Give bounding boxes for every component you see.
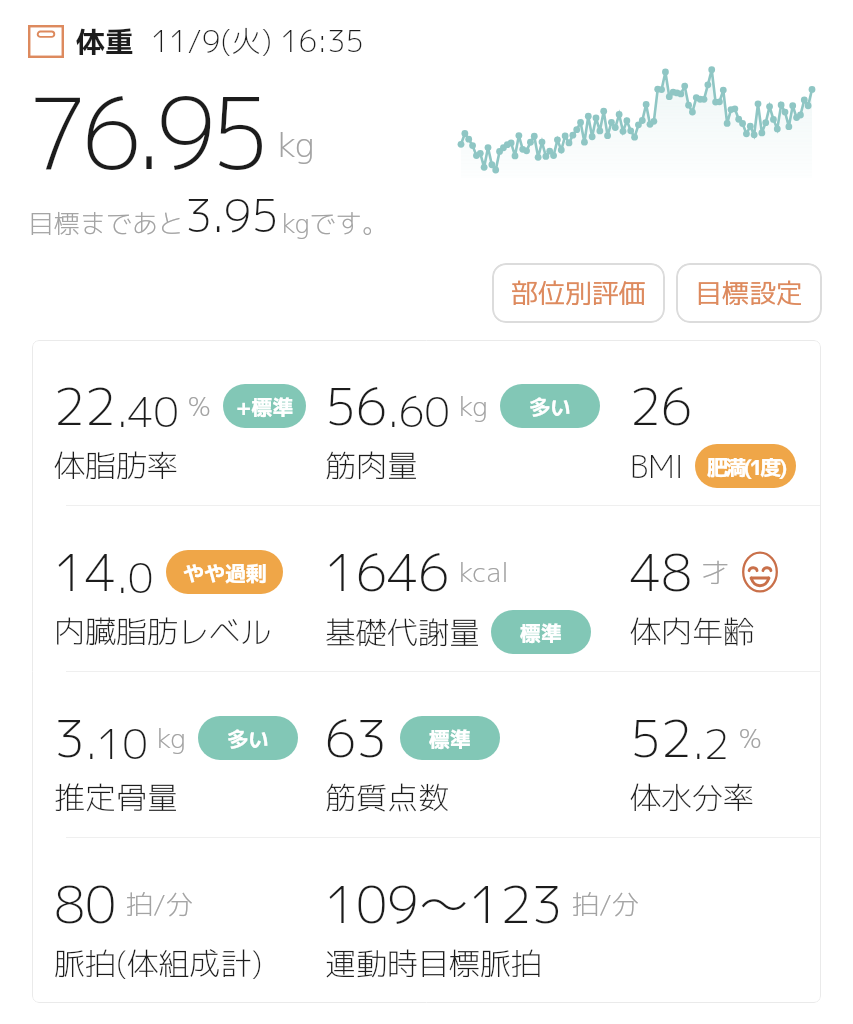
staticText: 運動時目標脈拍 [325, 942, 542, 985]
staticText: 才 [702, 553, 729, 591]
button[interactable]: 1646 [325, 536, 630, 654]
staticText: 52 [630, 702, 693, 773]
staticText: kg [278, 120, 315, 167]
staticText: % [188, 387, 211, 425]
staticText: 筋質点数 [325, 776, 449, 819]
staticText: 推定骨量 [54, 776, 178, 819]
staticText: % [739, 719, 762, 757]
button[interactable]: 部位別評価 [492, 263, 665, 323]
staticText: やや過剰 [183, 558, 267, 587]
other: Weight scale [28, 25, 64, 58]
staticText: +標準 [236, 392, 294, 421]
staticText: 80 [54, 868, 117, 939]
staticText: .40 [117, 382, 179, 441]
button[interactable]: 80 [54, 868, 325, 985]
button[interactable]: 26 [630, 370, 817, 488]
staticText: BMI [630, 445, 684, 488]
staticText: 体水分率 [630, 776, 754, 819]
button[interactable]: 22 [54, 370, 325, 487]
staticText: 多い [529, 392, 571, 421]
staticText: 標準 [520, 618, 562, 647]
staticText: 脈拍(体組成計) [54, 942, 263, 985]
staticText: 内臓脂肪レベル [54, 610, 271, 653]
button[interactable]: 3 [54, 702, 325, 819]
staticText: 体重 [76, 21, 135, 61]
staticText: .10 [86, 714, 148, 773]
staticText: kgです。 [282, 205, 388, 241]
staticText: 3.95 [185, 184, 279, 247]
staticText: 肥満(1度) [707, 452, 785, 481]
staticText: kg [459, 387, 488, 425]
staticText: 3 [54, 702, 86, 773]
staticText: 基礎代謝量 [325, 611, 480, 654]
staticText: 48 [630, 536, 693, 607]
staticText: 体内年齢 [630, 610, 754, 653]
button[interactable]: 52 [630, 702, 817, 819]
staticText: 拍/分 [126, 885, 194, 923]
staticText: kg [157, 719, 186, 757]
button[interactable]: 109〜123 [325, 868, 817, 985]
staticText: 63 [325, 702, 388, 773]
staticText: 多い [227, 724, 269, 753]
staticText: 目標設定 [695, 274, 803, 312]
staticText: 1646 [325, 536, 450, 607]
staticText: 76.95 [28, 65, 266, 184]
staticText: 標準 [429, 724, 471, 753]
staticText: .60 [388, 382, 450, 441]
staticText: 14 [54, 536, 117, 607]
staticText: kcal [459, 553, 509, 591]
staticText: .0 [117, 548, 154, 607]
staticText: 目標まであと [28, 205, 185, 241]
other: Body age rating [739, 551, 781, 593]
button[interactable]: 目標設定 [676, 263, 822, 323]
staticText: .2 [693, 714, 730, 773]
button[interactable]: 48 [630, 536, 817, 653]
staticText: 56 [325, 370, 388, 441]
button[interactable]: 63 [325, 702, 630, 819]
button[interactable]: 56 [325, 370, 630, 487]
staticText: 22 [54, 370, 117, 441]
staticText: 体脂肪率 [54, 444, 178, 487]
staticText: 部位別評価 [511, 274, 646, 312]
staticText: 拍/分 [572, 885, 640, 923]
staticText: 26 [630, 370, 693, 441]
staticText: 11/9(火) 16:35 [151, 20, 364, 62]
staticText: 109〜123 [325, 868, 563, 939]
button[interactable]: 14 [54, 536, 325, 653]
staticText: 筋肉量 [325, 444, 418, 487]
